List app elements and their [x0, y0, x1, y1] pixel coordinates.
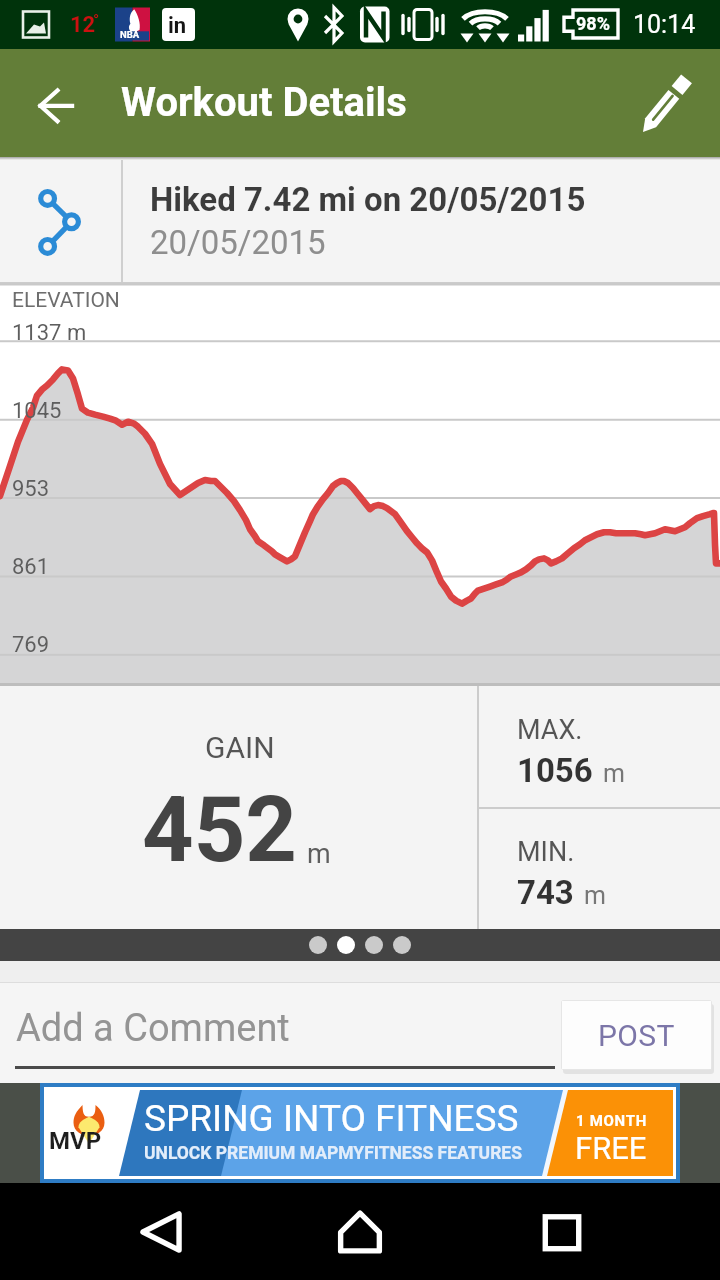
staticText: MVP — [49, 1127, 102, 1155]
staticText: in — [168, 13, 187, 39]
button[interactable]: Home — [320, 1183, 400, 1280]
button[interactable]: Hiked 7.42 mi on 20/05/2015 — [0, 160, 720, 282]
staticText: ELEVATION — [12, 288, 120, 313]
button[interactable]: Back — [18, 65, 94, 141]
staticText: Hiked 7.42 mi on 20/05/2015 — [150, 180, 586, 219]
staticText: m — [307, 838, 331, 870]
staticText: 861 — [12, 554, 50, 580]
staticText: 1137 m — [12, 320, 87, 346]
button[interactable]: Page 3 — [365, 936, 383, 954]
button[interactable]: POST — [562, 1001, 711, 1069]
staticText: 12 — [70, 12, 96, 38]
button[interactable]: GAIN — [0, 686, 477, 929]
staticText: Workout Details — [121, 79, 407, 126]
button[interactable]: MIN. — [479, 809, 720, 929]
button[interactable]: Page 4 — [393, 936, 411, 954]
staticText: SPRING INTO FITNESS — [144, 1097, 519, 1140]
staticText: 743 — [517, 873, 574, 912]
staticText: 1045 — [12, 398, 62, 424]
staticText: 20/05/2015 — [150, 223, 326, 262]
staticText: m — [603, 759, 625, 788]
staticText: 98% — [576, 13, 610, 34]
staticText: m — [584, 881, 606, 910]
staticText: POST — [598, 1018, 675, 1053]
button[interactable]: Page 2 — [337, 936, 355, 954]
staticText: Add a Comment — [16, 1006, 290, 1051]
staticText: MAX. — [517, 714, 583, 746]
staticText: 1056 — [517, 751, 593, 790]
staticText: 953 — [12, 476, 50, 502]
button[interactable]: Recent apps — [522, 1183, 602, 1280]
staticText: 769 — [12, 632, 50, 658]
staticText: 1 MONTH — [576, 1112, 647, 1130]
button[interactable]: Advertisement: Spring into Fitness — [47, 1090, 673, 1176]
button[interactable]: MAX. — [479, 686, 720, 807]
staticText: GAIN — [205, 730, 275, 765]
staticText: NBA — [120, 29, 140, 40]
staticText: MIN. — [517, 836, 575, 868]
staticText: FREE — [575, 1130, 647, 1166]
staticText: 10:14 — [633, 10, 696, 39]
staticText: UNLOCK PREMIUM MAPMYFITNESS FEATURES — [144, 1143, 522, 1164]
button[interactable]: Page 1 — [309, 936, 327, 954]
staticText: ° — [93, 11, 100, 30]
button[interactable]: Back — [120, 1183, 202, 1280]
button[interactable]: Edit — [632, 65, 708, 141]
staticText: 452 — [142, 778, 297, 883]
